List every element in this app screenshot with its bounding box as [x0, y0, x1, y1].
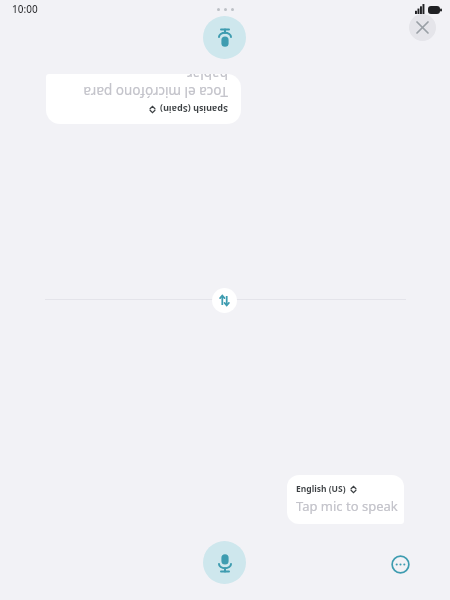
- button[interactable]: Speak Spanish: [203, 16, 246, 59]
- staticText: English (US): [296, 483, 346, 495]
- button[interactable]: Close: [409, 14, 436, 41]
- button[interactable]: Swap languages: [212, 288, 237, 313]
- button[interactable]: Spanish (Spain): [46, 74, 241, 124]
- button[interactable]: English (US): [287, 475, 404, 524]
- button[interactable]: Speak English: [203, 541, 246, 584]
- staticText: Spanish (Spain): [160, 104, 228, 116]
- staticText: Tap mic to speak: [296, 497, 398, 515]
- staticText: Toca el micrófono para hablar: [46, 74, 228, 101]
- staticText: 10:00: [12, 2, 38, 16]
- button[interactable]: Auto conversation mode: [388, 552, 412, 576]
